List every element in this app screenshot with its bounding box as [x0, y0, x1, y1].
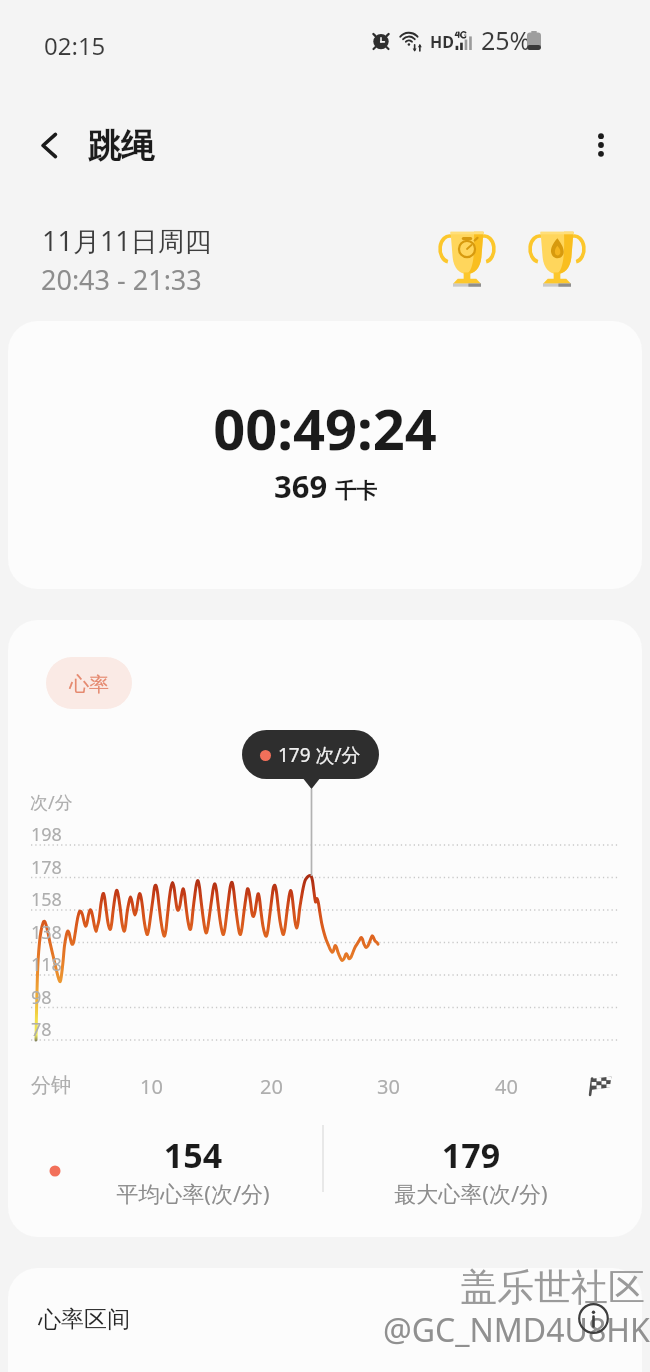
- staticText: 178: [31, 855, 62, 880]
- staticText: 369: [274, 465, 328, 507]
- staticText: 10: [140, 1073, 163, 1100]
- button[interactable]: 心率: [46, 657, 132, 709]
- staticText: 02:15: [44, 29, 106, 62]
- button[interactable]: Workout finish: [588, 1072, 614, 1098]
- staticText: 盖乐世社区: [460, 1264, 645, 1311]
- staticText: 198: [31, 822, 62, 847]
- staticText: 138: [31, 920, 62, 945]
- staticText: 心率区间: [38, 1305, 130, 1334]
- staticText: 179 次/分: [278, 742, 361, 768]
- staticText: @GC_NMD4U8HK: [383, 1308, 650, 1352]
- staticText: 分钟: [31, 1073, 71, 1098]
- staticText: HD: [430, 31, 454, 53]
- button[interactable]: 179 次/分: [242, 730, 379, 779]
- staticText: 25%: [481, 23, 531, 57]
- button[interactable]: More options: [572, 116, 630, 174]
- staticText: 最大心率(次/分): [331, 1178, 611, 1208]
- staticText: 154: [53, 1132, 333, 1178]
- staticText: 98: [31, 985, 52, 1010]
- staticText: 11月11日周四: [42, 222, 212, 259]
- staticText: 179: [331, 1132, 611, 1178]
- staticText: 118: [31, 952, 62, 977]
- button[interactable]: Back: [20, 116, 78, 174]
- staticText: 00:49:24: [8, 390, 642, 466]
- button[interactable]: Information: [578, 1303, 609, 1334]
- staticText: 30: [377, 1073, 400, 1100]
- staticText: 158: [31, 887, 62, 912]
- staticText: 平均心率(次/分): [53, 1178, 333, 1208]
- button[interactable]: Calories badge: [522, 221, 592, 291]
- staticText: 次/分: [30, 790, 73, 815]
- staticText: 20: [260, 1073, 283, 1100]
- button[interactable]: Duration badge: [432, 221, 502, 291]
- staticText: 心率: [69, 672, 109, 697]
- staticText: 40: [495, 1073, 518, 1100]
- staticText: 20:43 - 21:33: [41, 261, 202, 298]
- staticText: 78: [31, 1017, 52, 1042]
- button[interactable]: 心率区间: [8, 1268, 642, 1372]
- button[interactable]: 00:49:24: [8, 321, 642, 589]
- staticText: 千卡: [335, 478, 377, 504]
- staticText: 跳绳: [88, 125, 154, 167]
